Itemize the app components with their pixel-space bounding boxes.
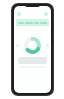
button[interactable]	[16, 19, 49, 26]
button[interactable]: Progress chart	[24, 37, 41, 54]
button[interactable]: Profile	[44, 12, 48, 16]
button[interactable]: Menu	[17, 12, 21, 16]
